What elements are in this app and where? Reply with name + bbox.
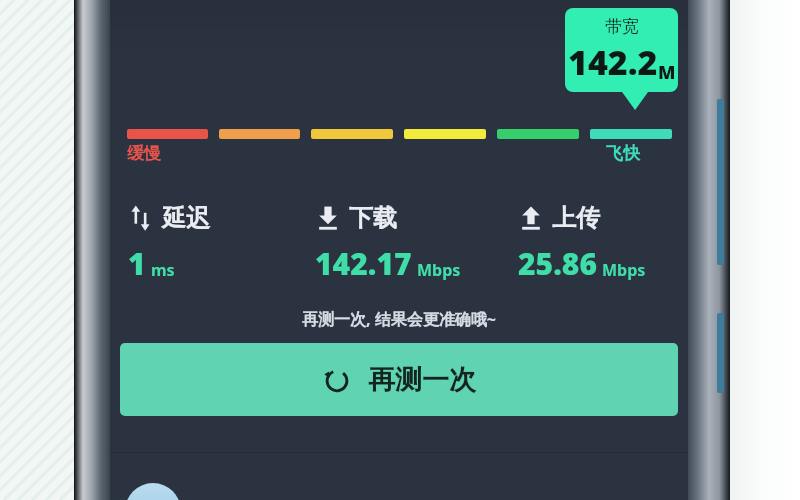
staticText: 下载 xyxy=(349,203,397,233)
staticText: Mbps xyxy=(602,259,646,281)
staticText: 142.2 xyxy=(568,39,658,85)
button[interactable]: Profile xyxy=(125,483,181,500)
staticText: 缓慢 xyxy=(127,143,161,164)
staticText: 再测一次, 结果会更准确哦~ xyxy=(302,308,496,330)
staticText: 25.86 xyxy=(518,243,597,284)
staticText: M xyxy=(658,60,676,85)
staticText: 延迟 xyxy=(162,203,210,233)
staticText: 1 xyxy=(128,243,146,284)
staticText: 上传 xyxy=(552,203,600,233)
staticText: 142.17 xyxy=(315,243,412,284)
staticText: 飞快 xyxy=(606,143,640,164)
staticText: 再测一次 xyxy=(368,363,476,397)
staticText: Mbps xyxy=(417,259,461,281)
button[interactable]: 再测一次 xyxy=(120,343,678,416)
staticText: ms xyxy=(151,259,175,281)
staticText: 带宽 xyxy=(605,16,639,37)
